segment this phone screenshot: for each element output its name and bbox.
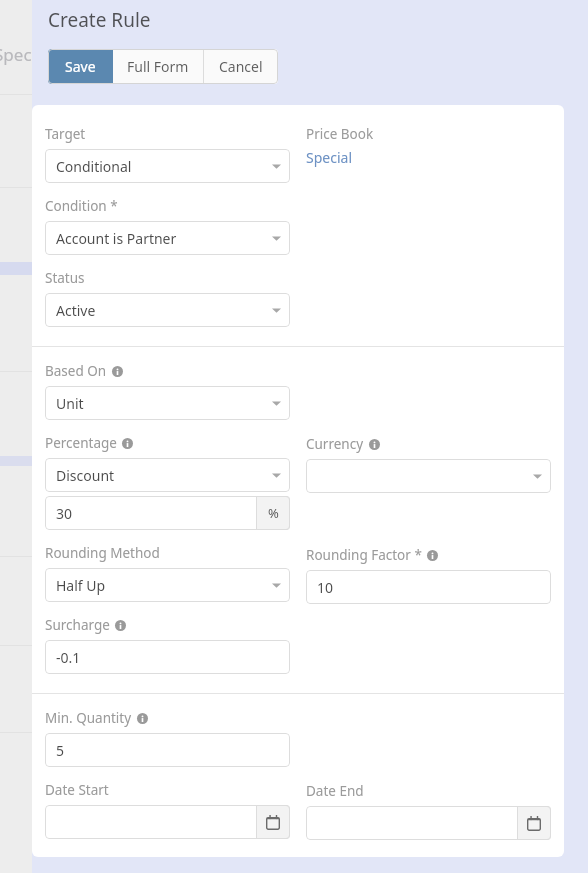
- staticText: Save: [65, 57, 96, 76]
- staticText: 10: [317, 578, 334, 597]
- staticText: Condition *: [45, 197, 118, 215]
- staticText: 30: [56, 504, 73, 523]
- staticText: Full Form: [127, 57, 189, 76]
- button[interactable]: 10: [306, 570, 551, 604]
- staticText: Discount: [56, 466, 115, 485]
- staticText: Date Start: [45, 781, 109, 799]
- button[interactable]: Save: [48, 49, 113, 84]
- button[interactable]: [306, 459, 551, 493]
- staticText: Active: [56, 301, 96, 320]
- staticText: Create Rule: [48, 7, 151, 33]
- staticText: %: [268, 504, 279, 522]
- staticText: Target: [45, 125, 86, 143]
- staticText: Rounding Factor *: [306, 546, 422, 564]
- staticText: Cancel: [219, 57, 263, 76]
- staticText: Account is Partner: [56, 229, 177, 248]
- button[interactable]: Unit: [45, 386, 290, 420]
- staticText: Status: [45, 269, 85, 287]
- button[interactable]: 30: [45, 496, 290, 530]
- staticText: Special: [306, 148, 352, 167]
- button[interactable]: Cancel: [204, 49, 278, 84]
- button[interactable]: Half Up: [45, 568, 290, 602]
- staticText: 5: [56, 741, 65, 760]
- staticText: Surcharge: [45, 616, 110, 634]
- staticText: Spec: [0, 43, 32, 66]
- button[interactable]: 5: [45, 733, 290, 767]
- staticText: Percentage: [45, 434, 117, 452]
- button[interactable]: Full Form: [113, 49, 203, 84]
- staticText: Half Up: [56, 576, 106, 595]
- button[interactable]: [306, 806, 551, 840]
- button[interactable]: Conditional: [45, 149, 290, 183]
- staticText: Currency: [306, 435, 364, 453]
- staticText: Rounding Method: [45, 544, 160, 562]
- button[interactable]: [45, 805, 290, 839]
- staticText: Price Book: [306, 125, 374, 143]
- button[interactable]: -0.1: [45, 640, 290, 674]
- button[interactable]: Account is Partner: [45, 221, 290, 255]
- staticText: Date End: [306, 782, 364, 800]
- staticText: Based On: [45, 362, 107, 380]
- staticText: -0.1: [56, 648, 81, 667]
- button[interactable]: Active: [45, 293, 290, 327]
- staticText: Unit: [56, 394, 84, 413]
- staticText: Min. Quantity: [45, 709, 132, 727]
- button[interactable]: Special: [306, 148, 352, 167]
- staticText: Conditional: [56, 157, 132, 176]
- button[interactable]: Discount: [45, 458, 290, 492]
